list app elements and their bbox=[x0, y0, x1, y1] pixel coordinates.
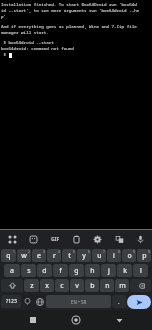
button[interactable]: k bbox=[117, 264, 132, 277]
staticText: x bbox=[45, 281, 49, 291]
button[interactable]: Clipboard bbox=[69, 232, 83, 246]
staticText: 9 bbox=[133, 250, 135, 254]
button[interactable]: Shift bbox=[1, 279, 23, 292]
staticText: 5 bbox=[73, 250, 75, 254]
button[interactable]: x bbox=[40, 279, 54, 292]
staticText: t bbox=[68, 251, 71, 261]
button[interactable]: u bbox=[92, 249, 106, 262]
button[interactable]: . bbox=[112, 295, 126, 308]
button[interactable]: Emoji bbox=[22, 295, 33, 308]
staticText: c bbox=[60, 281, 64, 291]
button[interactable]: Apps bbox=[5, 232, 19, 246]
button[interactable]: Recents bbox=[23, 310, 43, 330]
button[interactable]: Settings bbox=[90, 232, 104, 246]
button[interactable]: t bbox=[62, 249, 76, 262]
staticText: h bbox=[90, 266, 95, 276]
button[interactable]: Voice input bbox=[133, 232, 147, 246]
staticText: $ bbox=[1, 52, 9, 58]
staticText: box64droid: command not found bbox=[1, 46, 74, 52]
staticText: n bbox=[105, 281, 110, 291]
staticText: 6 bbox=[88, 250, 90, 254]
staticText: r bbox=[53, 251, 56, 261]
staticText: u bbox=[97, 251, 102, 261]
staticText: i bbox=[113, 251, 115, 261]
button[interactable]: q bbox=[1, 249, 16, 262]
staticText: b bbox=[90, 281, 95, 291]
staticText: $ box64droid --start bbox=[1, 40, 54, 46]
button[interactable]: f bbox=[53, 264, 68, 277]
staticText: o bbox=[127, 251, 132, 261]
button[interactable]: Home bbox=[66, 310, 86, 330]
button[interactable]: m bbox=[115, 279, 129, 292]
button[interactable]: i bbox=[107, 249, 121, 262]
button[interactable]: r bbox=[47, 249, 61, 262]
staticText: z bbox=[30, 281, 34, 291]
button[interactable]: Send bbox=[127, 295, 151, 309]
staticText: 8 bbox=[118, 250, 120, 254]
button[interactable]: g bbox=[69, 264, 84, 277]
staticText: p bbox=[142, 251, 147, 261]
staticText: v bbox=[75, 281, 79, 291]
staticText: 7 bbox=[103, 250, 105, 254]
staticText: 4 bbox=[58, 250, 60, 254]
button[interactable]: c bbox=[55, 279, 69, 292]
staticText: k bbox=[123, 266, 127, 276]
button[interactable]: n bbox=[100, 279, 114, 292]
staticText: 3 bbox=[43, 250, 45, 254]
staticText: GIF bbox=[51, 236, 60, 243]
button[interactable]: y bbox=[77, 249, 91, 262]
staticText: id --start', to see more arguments run '… bbox=[1, 8, 140, 14]
button[interactable]: GIF bbox=[48, 232, 62, 246]
button[interactable]: EN • SR bbox=[46, 295, 111, 308]
button[interactable]: a bbox=[4, 264, 20, 277]
staticText: g bbox=[74, 266, 79, 276]
staticText: w bbox=[21, 251, 27, 261]
staticText: ?123 bbox=[6, 298, 17, 305]
button[interactable]: v bbox=[70, 279, 84, 292]
button[interactable]: o bbox=[122, 249, 136, 262]
staticText: a bbox=[10, 266, 14, 276]
button[interactable]: b bbox=[85, 279, 99, 292]
button[interactable]: Back bbox=[109, 310, 129, 330]
button[interactable]: j bbox=[101, 264, 116, 277]
staticText: EN • SR bbox=[71, 299, 87, 305]
button[interactable]: Stickers bbox=[26, 232, 40, 246]
button[interactable]: w bbox=[17, 249, 31, 262]
button[interactable]: z bbox=[24, 279, 39, 292]
button[interactable]: Translate bbox=[112, 232, 126, 246]
staticText: e bbox=[37, 251, 41, 261]
button[interactable]: e bbox=[32, 249, 46, 262]
staticText: And if everything goes as planned, Wine … bbox=[1, 24, 137, 30]
button[interactable]: Backspace bbox=[130, 279, 151, 292]
staticText: j bbox=[108, 266, 110, 276]
staticText: s bbox=[27, 266, 31, 276]
staticText: 2 bbox=[28, 250, 30, 254]
button[interactable]: s bbox=[21, 264, 36, 277]
staticText: f bbox=[59, 266, 62, 276]
staticText: y bbox=[82, 251, 86, 261]
button[interactable]: l bbox=[133, 264, 148, 277]
staticText: q bbox=[6, 251, 11, 261]
staticText: p' bbox=[1, 14, 7, 20]
button[interactable]: ?123 bbox=[1, 295, 21, 308]
staticText: manager will start. bbox=[1, 30, 49, 36]
staticText: 1 bbox=[13, 250, 15, 254]
button[interactable]: d bbox=[37, 264, 52, 277]
staticText: d bbox=[42, 266, 47, 276]
button[interactable]: Change language bbox=[34, 295, 45, 308]
staticText: m bbox=[119, 281, 126, 291]
button[interactable]: p bbox=[137, 249, 151, 262]
staticText: 0 bbox=[148, 250, 150, 254]
staticText: . bbox=[118, 298, 120, 306]
button[interactable]: h bbox=[85, 264, 100, 277]
staticText: l bbox=[140, 266, 142, 276]
staticText: Installation finished. To start Box64Dro… bbox=[1, 2, 137, 8]
